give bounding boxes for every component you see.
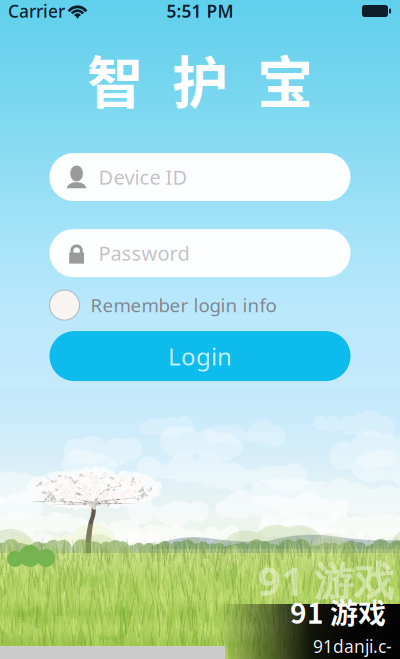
staticText: Carrier [8, 0, 65, 22]
staticText: Device ID [98, 164, 187, 190]
staticText: Password [98, 240, 189, 266]
button[interactable]: Remember login info [49, 289, 350, 321]
staticText: 游戏 [330, 591, 386, 632]
staticText: 91 游戏 [258, 554, 394, 607]
button[interactable]: Login [49, 331, 350, 381]
button[interactable]: Device ID [49, 153, 350, 201]
staticText: Login [168, 340, 232, 372]
staticText: 宝 [257, 38, 313, 119]
staticText: 5:51 PM [166, 0, 233, 22]
staticText: Remember login info [90, 293, 276, 317]
button[interactable]: Password [49, 229, 350, 277]
staticText: 91danji.com [313, 635, 392, 659]
staticText: 91 [290, 591, 324, 632]
staticText: 智 [87, 38, 143, 119]
staticText: 91danji.com [284, 607, 368, 626]
staticText: 护 [172, 38, 228, 119]
